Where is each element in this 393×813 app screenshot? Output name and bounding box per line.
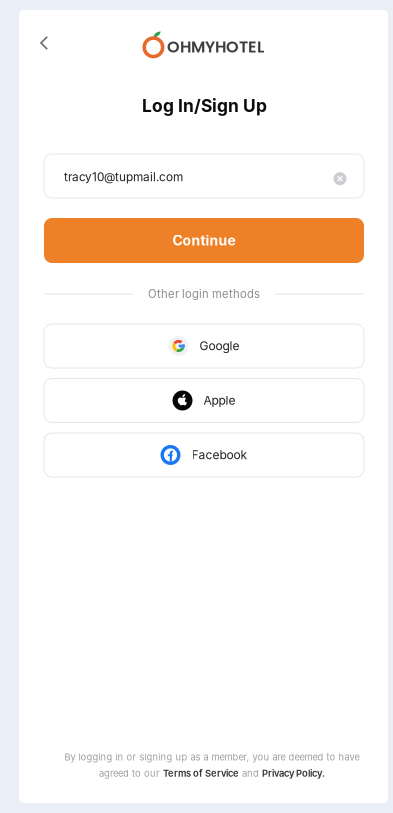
staticText: Terms of Service [163,768,239,779]
staticText: Privacy Policy. [262,768,325,779]
staticText: Apple [203,393,235,408]
staticText: Log In/Sign Up [142,95,267,116]
staticText: Facebook [191,448,247,462]
button[interactable]: Back [29,28,59,58]
button[interactable]: Continue [44,218,364,263]
staticText: tracy10@tupmail.com [64,170,183,184]
button[interactable]: Terms of Service [163,768,239,779]
staticText: Continue [172,232,235,249]
staticText: Other login methods [148,287,260,301]
button[interactable]: Google [44,324,364,368]
staticText: and [239,768,262,779]
staticText: agreed to our [99,768,163,779]
button[interactable]: Privacy Policy. [262,768,325,779]
staticText: By logging in or signing up as a member,… [64,751,359,763]
staticText: OHMYHOTEL [167,36,264,58]
button[interactable]: Apple [44,378,364,422]
button[interactable]: Facebook [44,433,364,477]
staticText: Google [199,339,239,353]
